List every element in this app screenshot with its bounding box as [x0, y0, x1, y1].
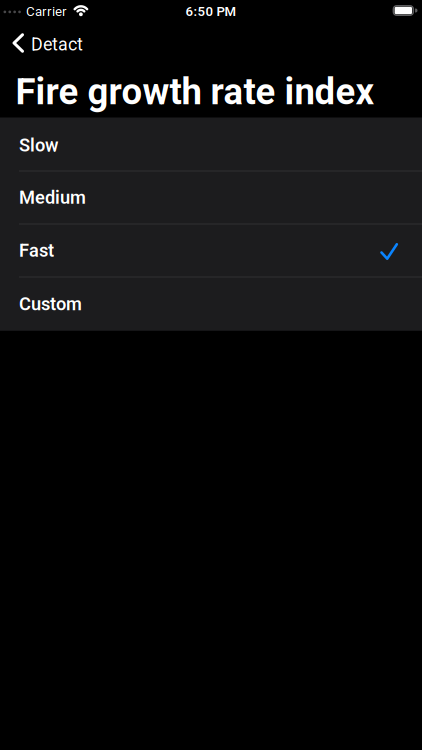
- button[interactable]: Custom: [0, 277, 422, 331]
- staticText: Fire growth rate index: [15, 70, 374, 113]
- button[interactable]: Fast: [0, 224, 422, 277]
- staticText: Medium: [19, 187, 86, 208]
- button[interactable]: Medium: [0, 171, 422, 224]
- staticText: Slow: [19, 134, 58, 156]
- staticText: 6:50 PM: [185, 4, 236, 19]
- staticText: Carrier: [26, 4, 67, 19]
- staticText: Custom: [19, 293, 82, 315]
- staticText: Fast: [19, 240, 54, 261]
- staticText: Detact: [31, 34, 83, 55]
- button[interactable]: Back: [0, 32, 83, 53]
- button[interactable]: Slow: [0, 117, 422, 171]
